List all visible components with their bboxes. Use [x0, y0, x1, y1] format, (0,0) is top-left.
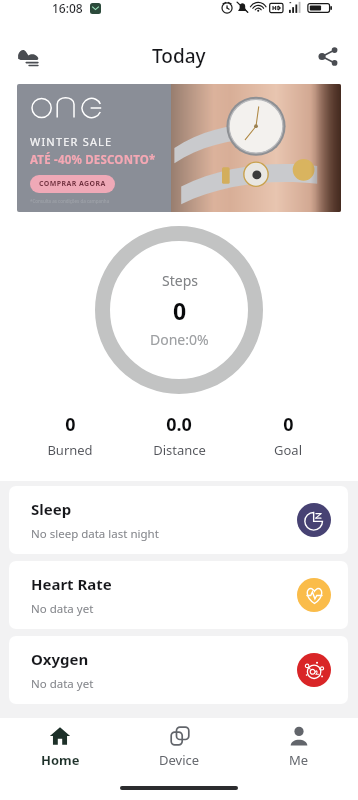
button[interactable]: Device — [120, 725, 239, 769]
staticText: Distance — [153, 441, 206, 459]
staticText: Oxygen — [31, 649, 89, 669]
button[interactable]: Me — [239, 725, 358, 769]
button[interactable]: Activity — [8, 36, 48, 76]
button[interactable]: COMPRAR AGORA — [39, 179, 106, 189]
staticText: Sleep — [31, 499, 72, 519]
staticText: WINTER SALE — [30, 134, 113, 149]
staticText: Home — [41, 751, 80, 769]
button[interactable]: WINTER SALE — [17, 84, 341, 212]
staticText: 0.0 — [166, 412, 192, 437]
staticText: Done:0% — [150, 330, 209, 349]
button[interactable]: Heart Rate — [9, 561, 348, 629]
staticText: 0 — [65, 412, 76, 437]
button[interactable]: 0 — [243, 412, 333, 459]
staticText: No data yet — [31, 676, 94, 692]
staticText: No sleep data last night — [31, 526, 159, 542]
staticText: Burned — [47, 441, 93, 459]
staticText: 0 — [283, 412, 294, 437]
button[interactable]: Sleep — [9, 486, 348, 554]
button[interactable]: 0 — [25, 412, 115, 459]
button[interactable]: Home — [0, 725, 120, 769]
button[interactable]: 0.0 — [134, 412, 224, 459]
staticText: Device — [159, 751, 200, 769]
staticText: Today — [152, 43, 206, 69]
staticText: COMPRAR AGORA — [39, 179, 106, 189]
staticText: No data yet — [31, 601, 94, 617]
staticText: *Consulta as condições da campanha — [30, 198, 110, 204]
button[interactable]: Share — [308, 36, 348, 76]
staticText: 0 — [173, 295, 187, 326]
button[interactable]: Oxygen — [9, 636, 348, 704]
staticText: Goal — [274, 441, 302, 459]
staticText: 16:08 — [52, 0, 83, 16]
staticText: Steps — [162, 271, 198, 290]
staticText: Me — [289, 751, 309, 769]
staticText: Heart Rate — [31, 574, 112, 594]
staticText: ATÉ -40% DESCONTO* — [30, 152, 156, 168]
